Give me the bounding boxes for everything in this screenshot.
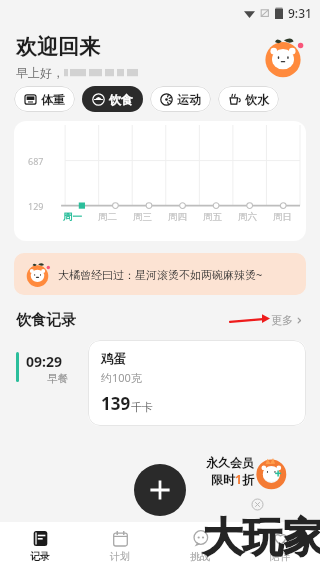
staticText: 9:31 (288, 5, 312, 21)
staticText: 早上好， (16, 65, 64, 80)
button[interactable]: 关闭 (248, 495, 266, 513)
button[interactable]: 计划 (80, 522, 160, 570)
staticText: 鸡蛋 (101, 351, 126, 367)
staticText: 周二 (98, 211, 117, 223)
button[interactable]: 陪伴 (240, 522, 320, 570)
staticText: 折 (242, 472, 254, 487)
staticText: 饮食 (109, 92, 133, 107)
staticText: 千卡 (131, 400, 153, 414)
button[interactable]: 添加记录 (134, 464, 186, 516)
staticText: 约100克 (101, 370, 142, 385)
button[interactable]: 运动 (150, 86, 211, 112)
staticText: 运动 (177, 92, 201, 107)
staticText: 1 (235, 471, 242, 487)
staticText: 周三 (133, 211, 152, 223)
button[interactable]: 大橘曾经曰过：星河滚烫不如两碗麻辣烫~ (14, 253, 306, 295)
staticText: 周六 (238, 211, 257, 223)
staticText: 饮水 (245, 92, 269, 107)
staticText: 129 (28, 200, 44, 212)
staticText: 周五 (203, 211, 222, 223)
staticText: 计划 (110, 550, 130, 563)
staticText: 更多 (271, 313, 293, 327)
button[interactable]: 挑战 (160, 522, 240, 570)
staticText: 体重 (41, 92, 65, 107)
button[interactable]: 永久会员限时1折 (206, 452, 289, 490)
staticText: 早餐 (47, 372, 68, 385)
staticText: 挑战 (190, 550, 210, 563)
button[interactable]: 个人头像 (260, 34, 306, 80)
staticText: 陪伴 (270, 550, 290, 563)
staticText: 大橘曾经曰过：星河滚烫不如两碗麻辣烫~ (58, 267, 263, 282)
staticText: 限时 (211, 472, 235, 487)
button[interactable]: 记录 (0, 522, 80, 570)
staticText: 欢迎回来 (16, 34, 100, 60)
button[interactable]: 更多 (271, 313, 304, 327)
staticText: 饮食记录 (16, 311, 76, 330)
staticText: 周日 (273, 211, 292, 223)
staticText: 687 (28, 155, 44, 167)
staticText: 大玩家 (203, 512, 320, 562)
button[interactable]: 饮水 (218, 86, 279, 112)
staticText: 周一 (63, 211, 82, 223)
button[interactable]: 饮食 (82, 86, 143, 112)
staticText: 周四 (168, 211, 187, 223)
staticText: 永久会员 (206, 455, 254, 470)
staticText: 记录 (30, 550, 50, 563)
staticText: 139 (101, 392, 131, 415)
button[interactable]: 687 (14, 121, 306, 241)
staticText: 09:29 (26, 352, 62, 371)
button[interactable]: 体重 (14, 86, 75, 112)
button[interactable]: 鸡蛋 (88, 340, 306, 426)
